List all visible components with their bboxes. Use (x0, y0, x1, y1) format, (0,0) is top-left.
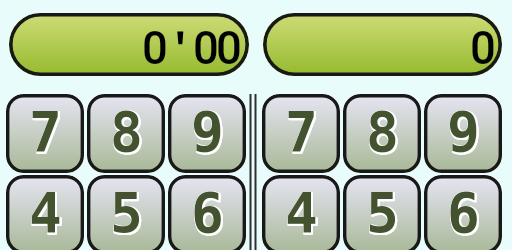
button[interactable]: 8 (343, 94, 421, 173)
staticText: 8 (366, 102, 399, 165)
button[interactable]: 9 (424, 94, 502, 173)
staticText: 5 (111, 183, 144, 246)
staticText: 5 (111, 181, 144, 244)
button[interactable]: 7 (262, 94, 340, 173)
staticText: 5 (112, 182, 145, 245)
staticText: 4 (31, 181, 64, 244)
staticText: 5 (367, 183, 400, 246)
staticText: 7 (31, 100, 64, 163)
staticText: 9 (191, 100, 224, 163)
staticText: 6 (448, 183, 481, 246)
staticText: 5 (110, 181, 143, 244)
staticText: 4 (285, 182, 318, 245)
staticText: 4 (285, 181, 318, 244)
staticText: 5 (368, 181, 401, 244)
staticText: 9 (449, 100, 482, 163)
staticText: 7 (287, 100, 320, 163)
staticText: 5 (367, 182, 400, 245)
staticText: 8 (112, 100, 145, 163)
staticText: 0 (216, 22, 242, 75)
button[interactable]: 4 (262, 175, 340, 250)
staticText: 8 (368, 100, 401, 163)
button[interactable]: Display (9, 13, 249, 76)
staticText: 5 (368, 183, 401, 246)
staticText: 7 (31, 102, 64, 165)
staticText: 8 (368, 101, 401, 164)
staticText: 8 (367, 102, 400, 165)
staticText: 4 (287, 183, 320, 246)
staticText: 5 (367, 181, 400, 244)
staticText: 7 (287, 101, 320, 164)
staticText: 9 (447, 101, 480, 164)
staticText: 6 (448, 182, 481, 245)
staticText: 9 (192, 102, 225, 165)
staticText: 9 (448, 101, 481, 164)
staticText: 5 (110, 183, 143, 246)
staticText: 5 (366, 182, 399, 245)
staticText: 8 (110, 101, 143, 164)
staticText: 4 (287, 181, 320, 244)
staticText: 4 (286, 183, 319, 246)
staticText: 8 (110, 102, 143, 165)
staticText: 9 (193, 102, 226, 165)
button[interactable]: 4 (6, 175, 84, 250)
staticText: 6 (191, 181, 224, 244)
staticText: 7 (285, 100, 318, 163)
staticText: 9 (191, 101, 224, 164)
staticText: 7 (29, 100, 62, 163)
staticText: 6 (447, 182, 480, 245)
staticText: 9 (193, 101, 226, 164)
staticText: 4 (29, 183, 62, 246)
button[interactable]: Display (263, 13, 502, 76)
staticText: 4 (31, 182, 64, 245)
staticText: 6 (193, 181, 226, 244)
staticText: 8 (110, 100, 143, 163)
button[interactable]: 8 (87, 94, 165, 173)
staticText: 9 (449, 102, 482, 165)
staticText: 9 (191, 100, 224, 163)
staticText: 8 (366, 100, 399, 163)
staticText: 7 (286, 102, 319, 165)
staticText: 4 (29, 181, 62, 244)
staticText: 8 (111, 100, 144, 163)
staticText: 4 (29, 181, 62, 244)
staticText: 6 (191, 181, 224, 244)
button[interactable]: 6 (168, 175, 246, 250)
staticText: 7 (286, 100, 319, 163)
staticText: 4 (30, 182, 63, 245)
staticText: 6 (447, 183, 480, 246)
staticText: 7 (287, 102, 320, 165)
staticText: 4 (287, 182, 320, 245)
staticText: 4 (31, 183, 64, 246)
staticText: 7 (29, 100, 62, 163)
button[interactable]: 5 (87, 175, 165, 250)
staticText: 9 (447, 102, 480, 165)
staticText: 5 (368, 182, 401, 245)
staticText: 7 (30, 100, 63, 163)
staticText: 8 (366, 100, 399, 163)
staticText: 5 (112, 181, 145, 244)
staticText: 6 (192, 182, 225, 245)
staticText: 6 (192, 183, 225, 246)
staticText: 4 (30, 183, 63, 246)
staticText: 9 (447, 100, 480, 163)
staticText: 9 (448, 100, 481, 163)
staticText: 9 (447, 100, 480, 163)
staticText: 7 (30, 101, 63, 164)
staticText: 8 (366, 101, 399, 164)
staticText: 8 (112, 102, 145, 165)
staticText: 4 (285, 181, 318, 244)
staticText: 5 (110, 182, 143, 245)
staticText: 8 (367, 101, 400, 164)
staticText: 6 (191, 182, 224, 245)
staticText: 0 (470, 22, 496, 75)
staticText: 6 (447, 181, 480, 244)
staticText: 8 (110, 100, 143, 163)
button[interactable]: 5 (343, 175, 421, 250)
button[interactable]: 9 (168, 94, 246, 173)
button[interactable]: 7 (6, 94, 84, 173)
button[interactable]: 6 (424, 175, 502, 250)
staticText: 7 (29, 101, 62, 164)
staticText: 9 (191, 102, 224, 165)
staticText: 6 (191, 183, 224, 246)
